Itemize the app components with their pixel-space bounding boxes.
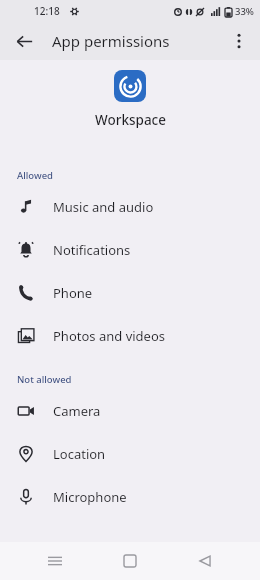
button[interactable]: Music and audio [0, 185, 260, 228]
staticText: Location [53, 445, 106, 463]
staticText: Notifications [53, 241, 131, 259]
button[interactable]: Back [6, 23, 42, 59]
button[interactable]: More options [222, 24, 256, 58]
button[interactable]: Photos and videos [0, 314, 260, 357]
button[interactable]: Recent apps [35, 542, 75, 580]
staticText: Camera [53, 402, 101, 420]
button[interactable]: Back [185, 542, 225, 580]
staticText: Workspace [95, 111, 166, 129]
staticText: 33% [235, 5, 254, 18]
staticText: Not allowed [17, 373, 72, 386]
staticText: Phone [53, 284, 93, 302]
staticText: Allowed [17, 169, 53, 182]
staticText: Music and audio [53, 198, 154, 216]
button[interactable]: Notifications [0, 228, 260, 271]
staticText: Microphone [53, 488, 127, 506]
button[interactable]: Phone [0, 271, 260, 314]
staticText: 12:18 [34, 4, 60, 18]
button[interactable]: Home [110, 542, 150, 580]
staticText: App permissions [52, 31, 170, 51]
staticText: Photos and videos [53, 327, 166, 345]
button[interactable]: Location [0, 432, 260, 475]
button[interactable]: Camera [0, 389, 260, 432]
button[interactable]: Microphone [0, 475, 260, 518]
